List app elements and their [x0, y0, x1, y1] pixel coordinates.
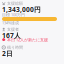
- staticText: 目標 100万円: [2, 12, 25, 17]
- staticText: 1,343,000円: [2, 5, 41, 14]
- staticText: 残り時間: [7, 45, 23, 50]
- staticText: 支援者: [7, 27, 19, 32]
- staticText: 134%達成: [2, 20, 19, 25]
- staticText: 本日 12人が新たに支援: [7, 37, 48, 42]
- staticText: 支援総額: [7, 1, 23, 6]
- staticText: 2日: [2, 49, 13, 58]
- staticText: 167人: [2, 31, 21, 40]
